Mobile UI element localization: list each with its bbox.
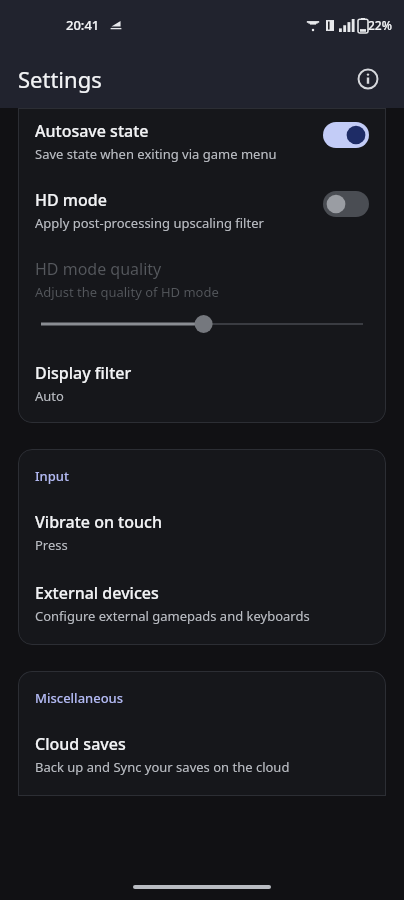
- staticText: Adjust the quality of HD mode: [35, 283, 219, 301]
- button[interactable]: External devices: [35, 582, 369, 625]
- staticText: Save state when exiting via game menu: [35, 145, 277, 163]
- button[interactable]: HD mode quality: [35, 258, 369, 334]
- staticText: Auto: [35, 387, 64, 405]
- button[interactable]: HD mode: [35, 189, 369, 232]
- staticText: HD mode quality: [35, 258, 162, 280]
- staticText: Display filter: [35, 362, 132, 384]
- staticText: Cloud saves: [35, 733, 126, 755]
- staticText: 22%: [368, 17, 392, 33]
- staticText: External devices: [35, 582, 159, 604]
- staticText: HD mode: [35, 189, 107, 211]
- staticText: Input: [35, 467, 69, 485]
- staticText: Miscellaneous: [35, 689, 124, 707]
- staticText: Configure external gamepads and keyboard…: [35, 607, 310, 625]
- staticText: Autosave state: [35, 120, 149, 142]
- staticText: Vibrate on touch: [35, 511, 162, 533]
- button[interactable]: Display filter: [35, 362, 369, 405]
- staticText: Back up and Sync your saves on the cloud: [35, 758, 290, 776]
- staticText: 20:41: [66, 16, 100, 34]
- staticText: Press: [35, 536, 68, 554]
- button[interactable]: About: [348, 59, 388, 99]
- staticText: Apply post-processing upscaling filter: [35, 214, 264, 232]
- button[interactable]: Autosave state: [35, 120, 369, 163]
- staticText: Settings: [18, 64, 102, 94]
- button[interactable]: Vibrate on touch: [35, 511, 369, 554]
- button[interactable]: Cloud saves: [35, 733, 369, 776]
